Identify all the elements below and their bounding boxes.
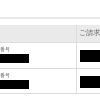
button[interactable] xyxy=(77,69,100,94)
staticText: 番号 xyxy=(0,72,10,78)
button[interactable]: 番号 xyxy=(0,43,76,68)
button[interactable] xyxy=(77,43,100,68)
staticText: ご請求金額 xyxy=(79,28,100,37)
button[interactable]: 番号 xyxy=(0,69,76,94)
staticText: 番号 xyxy=(0,46,10,52)
